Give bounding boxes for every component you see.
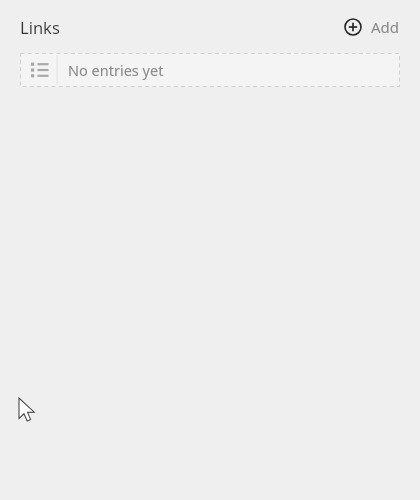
button[interactable]: No entries yet [20, 53, 400, 87]
staticText: Add [371, 17, 400, 37]
staticText: No entries yet [68, 60, 164, 80]
staticText: Links [20, 16, 60, 38]
other: Add [344, 18, 362, 36]
button[interactable]: Add [344, 17, 400, 37]
